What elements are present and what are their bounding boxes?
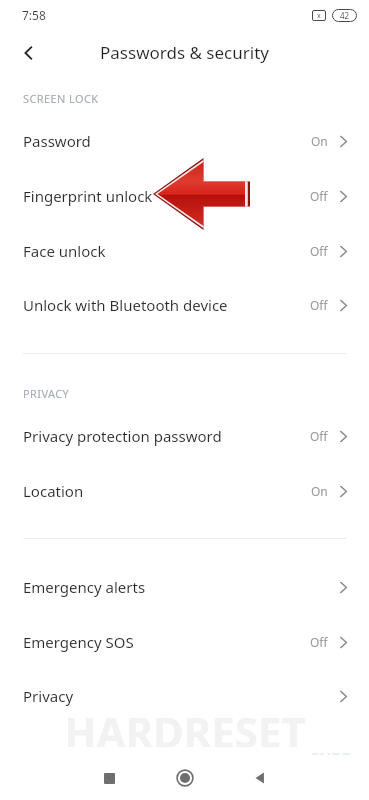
- staticText: SCREEN LOCK: [23, 91, 99, 106]
- staticText: Off: [310, 428, 328, 444]
- staticText: 7:58: [22, 7, 46, 23]
- button[interactable]: Emergency SOS: [0, 620, 369, 664]
- staticText: Off: [310, 634, 328, 650]
- staticText: Off: [310, 243, 328, 259]
- button[interactable]: Unlock with Bluetooth device: [0, 283, 369, 327]
- button[interactable]: Back: [243, 761, 277, 795]
- staticText: INFO: [312, 748, 353, 768]
- button[interactable]: Fingerprint unlock: [0, 174, 369, 218]
- staticText: Unlock with Bluetooth device: [23, 295, 310, 315]
- staticText: Privacy: [23, 686, 339, 706]
- staticText: Privacy protection password: [23, 426, 310, 446]
- staticText: Passwords & security: [100, 41, 269, 64]
- staticText: 42: [340, 10, 350, 21]
- button[interactable]: Back: [10, 34, 48, 72]
- staticText: Location: [23, 481, 311, 501]
- button[interactable]: Face unlock: [0, 229, 369, 273]
- staticText: Emergency SOS: [23, 632, 310, 652]
- button[interactable]: Location: [0, 469, 369, 513]
- button[interactable]: Recent apps: [92, 761, 126, 795]
- staticText: On: [311, 483, 328, 499]
- staticText: Off: [310, 188, 328, 204]
- staticText: Off: [310, 297, 328, 313]
- button[interactable]: Home: [168, 761, 202, 795]
- staticText: Face unlock: [23, 241, 310, 261]
- button[interactable]: Emergency alerts: [0, 565, 369, 609]
- staticText: PRIVACY: [23, 386, 70, 401]
- button[interactable]: Privacy: [0, 674, 369, 718]
- staticText: On: [311, 133, 328, 149]
- button[interactable]: Password: [0, 119, 369, 163]
- staticText: x: [317, 11, 321, 21]
- button[interactable]: Privacy protection password: [0, 414, 369, 458]
- staticText: Fingerprint unlock: [23, 186, 310, 206]
- staticText: Emergency alerts: [23, 577, 339, 597]
- staticText: HARDRESET: [64, 703, 306, 747]
- staticText: Password: [23, 131, 311, 151]
